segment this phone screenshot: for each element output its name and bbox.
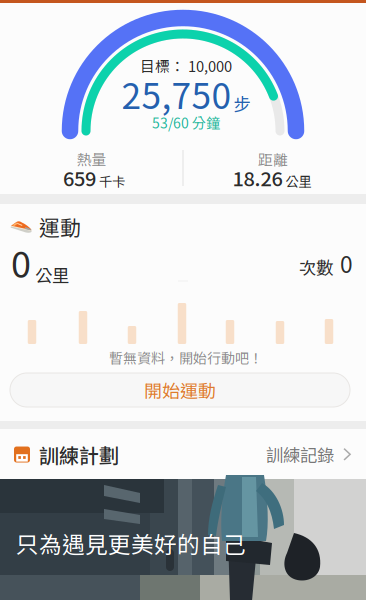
staticText: 0: [340, 247, 353, 279]
staticText: 千卡: [99, 171, 125, 190]
staticText: 運動: [39, 211, 81, 241]
staticText: 訓練記錄: [266, 442, 334, 467]
staticText: 0: [11, 236, 31, 288]
staticText: 次數: [299, 254, 333, 279]
staticText: 步: [233, 91, 250, 116]
staticText: 公里: [285, 171, 311, 190]
staticText: 暫無資料，開始行動吧！: [109, 347, 263, 368]
staticText: 訓練計劃: [39, 440, 119, 469]
staticText: 開始運動: [144, 377, 216, 403]
staticText: 熱量: [76, 148, 106, 169]
staticText: 目標： 10,000: [140, 55, 232, 76]
staticText: 53/60 分鐘: [152, 112, 220, 133]
button[interactable]: 開始運動: [10, 373, 350, 407]
staticText: 公里: [35, 262, 69, 287]
button[interactable]: 訓練計劃: [0, 429, 366, 480]
staticText: 659: [63, 163, 96, 192]
staticText: 25,750: [121, 68, 231, 119]
staticText: 只為遇見更美好的自己: [16, 527, 246, 559]
staticText: 18.26: [232, 163, 282, 192]
staticText: 距離: [258, 148, 288, 170]
